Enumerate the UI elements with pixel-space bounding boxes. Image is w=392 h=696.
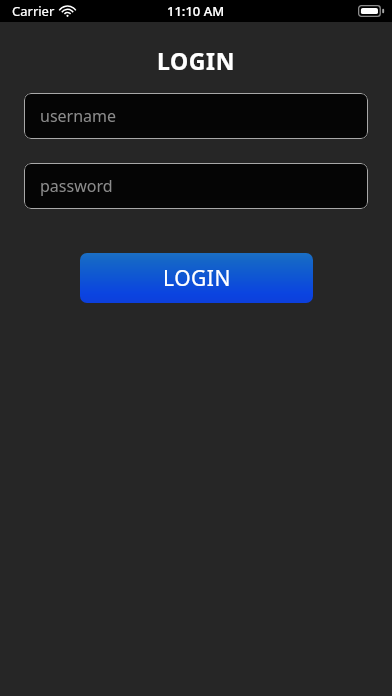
staticText: username — [40, 105, 117, 127]
button[interactable]: username — [24, 93, 368, 139]
staticText: Carrier — [12, 2, 55, 20]
button[interactable]: password — [24, 163, 368, 209]
staticText: LOGIN — [163, 264, 231, 293]
staticText: password — [40, 175, 113, 197]
staticText: 11:10 AM — [167, 2, 225, 20]
staticText: LOGIN — [157, 45, 235, 76]
button[interactable]: LOGIN — [80, 253, 313, 303]
